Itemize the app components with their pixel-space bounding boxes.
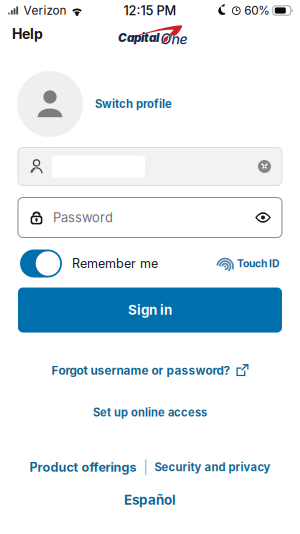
staticText: Security and privacy <box>154 460 270 474</box>
button[interactable]: Sign in <box>18 287 282 332</box>
button[interactable]: Security and privacy <box>154 455 270 479</box>
staticText: Verizon <box>23 3 66 18</box>
button[interactable]: Forgot username or password? <box>0 357 300 384</box>
button[interactable]: Español <box>0 487 300 513</box>
staticText: Product offerings <box>29 460 136 475</box>
staticText: | <box>143 459 147 475</box>
staticText: One <box>161 31 188 48</box>
button[interactable]: Switch profile <box>83 87 184 121</box>
staticText: 12:15 PM <box>123 3 176 18</box>
staticText: Forgot username or password? <box>51 363 230 378</box>
button[interactable]: Help <box>0 18 55 49</box>
staticText: Sign in <box>128 302 172 318</box>
staticText: Switch profile <box>95 97 172 111</box>
staticText: 60% <box>244 3 270 18</box>
staticText: Help <box>12 25 43 42</box>
staticText: Remember me <box>72 256 158 271</box>
button[interactable]: Touch ID <box>217 256 280 271</box>
staticText: One <box>160 31 187 47</box>
staticText: Touch ID <box>237 257 280 270</box>
button[interactable]: Set up online access <box>0 400 300 425</box>
staticText: Capital <box>118 31 159 45</box>
staticText: Password <box>53 210 113 225</box>
staticText: One <box>160 30 187 47</box>
button[interactable]: Remember me <box>20 249 158 277</box>
staticText: Set up online access <box>93 406 207 419</box>
button[interactable]: Product offerings <box>29 455 136 480</box>
staticText: Español <box>124 492 176 508</box>
